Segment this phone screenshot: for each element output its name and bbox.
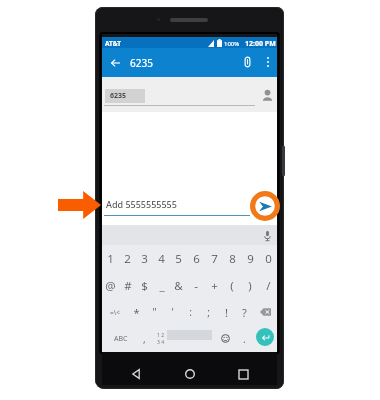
button[interactable]: / <box>259 272 277 299</box>
button[interactable]: _ <box>153 272 170 299</box>
button[interactable]: 1 <box>102 245 119 272</box>
button[interactable]: 6235 <box>105 89 145 103</box>
button[interactable]: . <box>236 325 252 352</box>
staticText: ; <box>207 305 210 319</box>
button[interactable]: 1 2 <box>152 325 170 352</box>
button[interactable]: 8 <box>223 245 241 272</box>
staticText: 6235 <box>110 91 127 101</box>
staticText: ! <box>225 305 228 320</box>
staticText: 12:00 PM <box>245 39 276 49</box>
button[interactable]: # <box>119 272 136 299</box>
button[interactable]: 7 <box>205 245 223 272</box>
staticText: 5 <box>175 251 182 267</box>
button[interactable]: Choose contact <box>258 86 276 104</box>
button[interactable]: @ <box>102 272 119 299</box>
staticText: AT&T <box>105 39 121 48</box>
button[interactable]: , <box>135 325 153 352</box>
staticText: 0 <box>265 251 272 267</box>
staticText: 6235 <box>130 56 153 70</box>
staticText: 4 <box>158 251 165 267</box>
button[interactable]: ! <box>217 299 235 325</box>
button[interactable]: Voice input <box>261 229 274 242</box>
button[interactable]: ( <box>223 272 241 299</box>
button[interactable]: & <box>170 272 187 299</box>
button[interactable]: : <box>181 299 199 325</box>
staticText: : <box>189 305 192 319</box>
staticText: " <box>152 305 157 319</box>
button[interactable]: ; <box>199 299 217 325</box>
button[interactable]: ? <box>235 299 253 325</box>
staticText: 8 <box>229 251 236 267</box>
button[interactable]: 9 <box>241 245 259 272</box>
staticText: 100% <box>224 40 240 48</box>
button[interactable]: 4 <box>153 245 170 272</box>
staticText: $ <box>141 278 148 294</box>
staticText: 1 <box>107 251 114 267</box>
staticText: =\< <box>110 308 120 317</box>
staticText: Add 5555555555 <box>106 198 177 210</box>
button[interactable]: Home <box>180 364 200 384</box>
button[interactable]: 0 <box>259 245 277 272</box>
button[interactable]: =\< <box>102 299 127 325</box>
staticText: / <box>266 278 271 294</box>
button[interactable]: Emoji <box>217 325 233 352</box>
staticText: + <box>211 278 218 294</box>
staticText: _ <box>159 278 165 294</box>
button[interactable]: 5 <box>170 245 187 272</box>
staticText: 2 <box>124 251 131 267</box>
staticText: # <box>124 278 132 294</box>
button[interactable]: * <box>127 299 145 325</box>
button[interactable]: - <box>187 272 205 299</box>
staticText: @ <box>105 278 116 294</box>
button[interactable]: Enter <box>255 327 274 346</box>
button[interactable]: ' <box>163 299 181 325</box>
staticText: ' <box>171 305 174 319</box>
button[interactable]: 3 <box>136 245 153 272</box>
button[interactable]: 6 <box>187 245 205 272</box>
staticText: ) <box>248 278 252 294</box>
staticText: 3 <box>141 251 148 267</box>
button[interactable]: Send <box>256 197 274 215</box>
button[interactable]: " <box>145 299 163 325</box>
staticText: ABC <box>114 334 128 344</box>
staticText: ? <box>242 305 247 320</box>
staticText: * <box>133 305 140 320</box>
staticText: 1 2 <box>157 332 165 339</box>
staticText: 7 <box>211 251 218 267</box>
button[interactable]: Recent apps <box>233 364 253 384</box>
button[interactable]: Backspace <box>253 299 277 325</box>
staticText: . <box>243 332 246 346</box>
button[interactable]: $ <box>136 272 153 299</box>
staticText: , <box>143 332 146 346</box>
button[interactable]: Back <box>126 364 146 384</box>
staticText: 3 4 <box>157 339 165 346</box>
staticText: & <box>174 278 183 294</box>
button[interactable]: + <box>205 272 223 299</box>
button[interactable]: Attach file <box>238 53 256 71</box>
staticText: - <box>194 278 198 294</box>
button[interactable]: ) <box>241 272 259 299</box>
button[interactable]: Back <box>106 53 125 72</box>
button[interactable]: ABC <box>108 325 133 352</box>
button[interactable]: More options <box>259 53 277 71</box>
staticText: 6 <box>193 251 200 267</box>
staticText: ( <box>230 278 234 294</box>
staticText: 9 <box>247 251 254 267</box>
button[interactable]: 2 <box>119 245 136 272</box>
